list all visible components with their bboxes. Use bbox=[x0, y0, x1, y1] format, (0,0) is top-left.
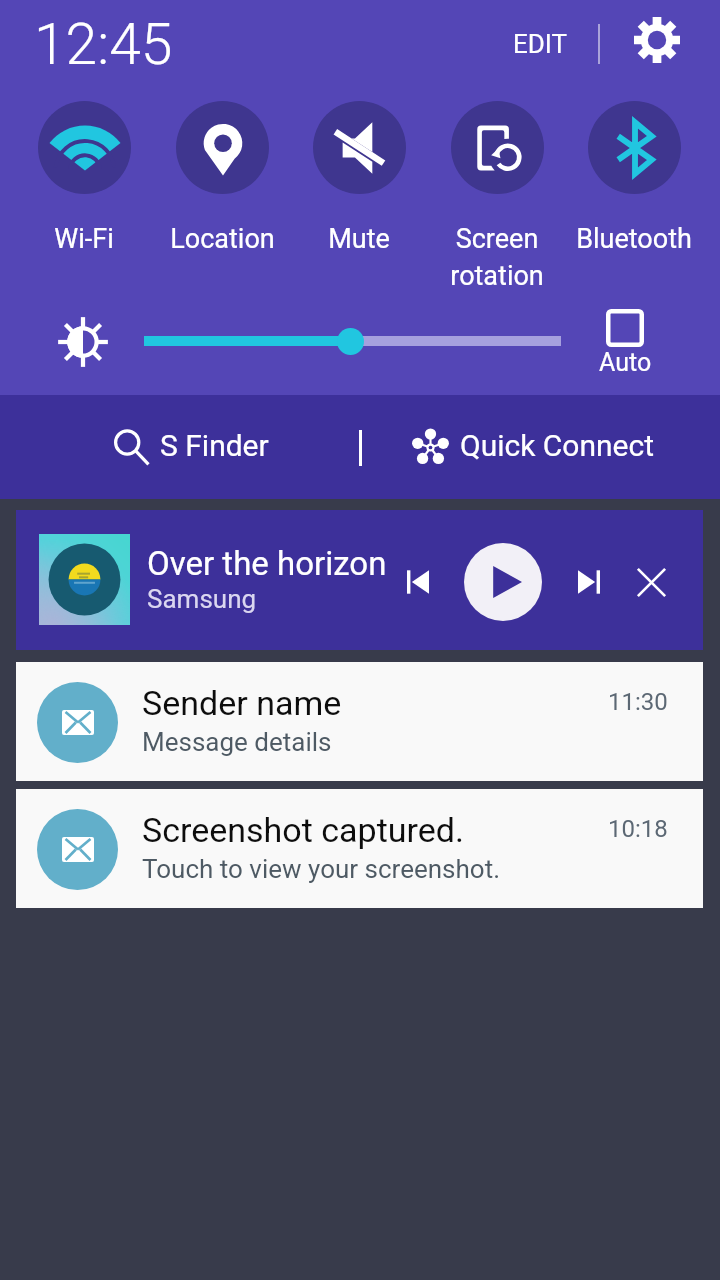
button[interactable]: Bluetooth bbox=[566, 101, 702, 255]
staticText: 10:18 bbox=[608, 815, 668, 843]
staticText: Mute bbox=[328, 223, 390, 255]
button[interactable]: Wi-Fi bbox=[16, 101, 152, 255]
staticText: Touch to view your screenshot. bbox=[142, 854, 501, 884]
button[interactable]: Settings bbox=[624, 7, 690, 73]
staticText: S Finder bbox=[160, 428, 269, 463]
button[interactable]: Sender name bbox=[16, 662, 703, 781]
staticText: Screenshot captured. bbox=[142, 810, 464, 850]
button[interactable]: Screenshot captured. bbox=[16, 789, 703, 908]
staticText: Screen rotation bbox=[450, 223, 544, 291]
button[interactable]: Over the horizon bbox=[16, 510, 703, 650]
button[interactable]: S Finder bbox=[0, 395, 380, 499]
staticText: Message details bbox=[142, 727, 332, 757]
staticText: 11:30 bbox=[608, 688, 668, 716]
staticText: Sender name bbox=[142, 683, 342, 723]
button[interactable]: Screen rotation bbox=[429, 101, 565, 291]
button[interactable]: Auto brightness bbox=[592, 302, 658, 378]
button[interactable]: Next track bbox=[560, 553, 618, 611]
staticText: Location bbox=[170, 223, 275, 255]
button[interactable]: Close bbox=[618, 549, 684, 615]
staticText: Wi-Fi bbox=[54, 223, 114, 255]
button[interactable]: Mute bbox=[291, 101, 427, 255]
button[interactable]: Quick Connect bbox=[362, 395, 704, 499]
button[interactable]: EDIT bbox=[497, 19, 584, 69]
staticText: 12:45 bbox=[34, 11, 173, 78]
button[interactable]: Play bbox=[462, 541, 544, 623]
staticText: Over the horizon bbox=[147, 544, 387, 583]
staticText: Quick Connect bbox=[460, 428, 655, 463]
staticText: Samsung bbox=[147, 584, 257, 614]
staticText: EDIT bbox=[513, 29, 568, 59]
button[interactable]: Previous track bbox=[389, 553, 447, 611]
staticText: Auto bbox=[599, 348, 652, 377]
button[interactable]: Location bbox=[154, 101, 290, 255]
staticText: Bluetooth bbox=[576, 223, 692, 255]
